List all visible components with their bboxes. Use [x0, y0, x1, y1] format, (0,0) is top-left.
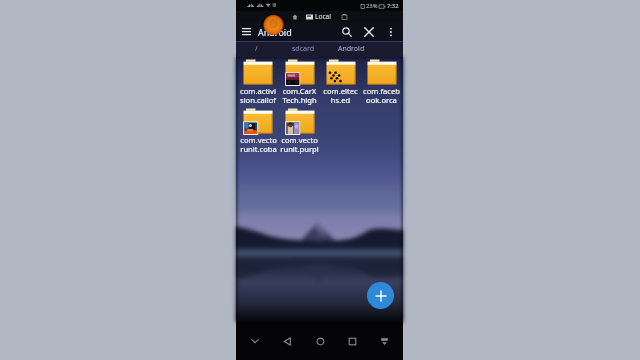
- button[interactable]: Search: [336, 22, 358, 41]
- button[interactable]: Home storage: [289, 11, 300, 22]
- button[interactable]: Menu: [238, 23, 255, 40]
- staticText: 23%: [366, 2, 378, 10]
- button[interactable]: Local: [306, 12, 332, 21]
- button[interactable]: Home: [307, 322, 333, 360]
- button[interactable]: /: [255, 44, 258, 54]
- staticText: com.vecto runit.purpl: [280, 135, 319, 154]
- button[interactable]: Add: [367, 282, 394, 309]
- button[interactable]: Close: [358, 22, 380, 41]
- button[interactable]: Hide: [242, 322, 268, 360]
- staticText: Android: [258, 26, 292, 38]
- button[interactable]: com.vecto runit.coba: [237, 107, 279, 154]
- staticText: com.eltec hs.ed: [323, 86, 358, 105]
- button[interactable]: Switch keyboard: [371, 322, 397, 360]
- button[interactable]: Recents: [339, 322, 365, 360]
- staticText: Local: [315, 12, 332, 21]
- button[interactable]: Storage: [339, 11, 350, 22]
- button[interactable]: com.faceb ook.orca: [361, 58, 402, 105]
- button[interactable]: com.vecto runit.purpl: [279, 107, 320, 154]
- staticText: com.vecto runit.coba: [240, 135, 277, 154]
- button[interactable]: com.activi sion.callof: [237, 58, 279, 105]
- staticText: com.activi sion.callof: [240, 86, 276, 105]
- button[interactable]: More options: [380, 22, 402, 41]
- button[interactable]: Android: [338, 44, 365, 54]
- button[interactable]: Back: [274, 322, 300, 360]
- staticText: com.CarX Tech.high: [282, 86, 317, 105]
- button[interactable]: com.CarX Tech.high: [279, 58, 320, 105]
- button[interactable]: com.eltec hs.ed: [320, 58, 361, 105]
- staticText: com.faceb ook.orca: [363, 86, 400, 105]
- button[interactable]: sdcard: [292, 44, 315, 54]
- staticText: 7:32: [387, 2, 399, 10]
